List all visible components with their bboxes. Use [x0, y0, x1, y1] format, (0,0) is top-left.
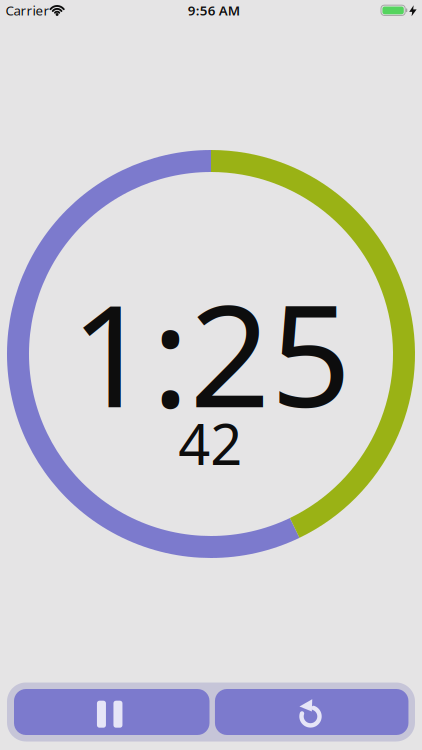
button[interactable]: [14, 689, 209, 735]
staticText: 1:25: [70, 259, 351, 446]
staticText: Carrier: [6, 1, 50, 19]
button[interactable]: [215, 689, 408, 735]
staticText: 9:56 AM: [188, 1, 240, 19]
staticText: 42: [178, 406, 242, 480]
